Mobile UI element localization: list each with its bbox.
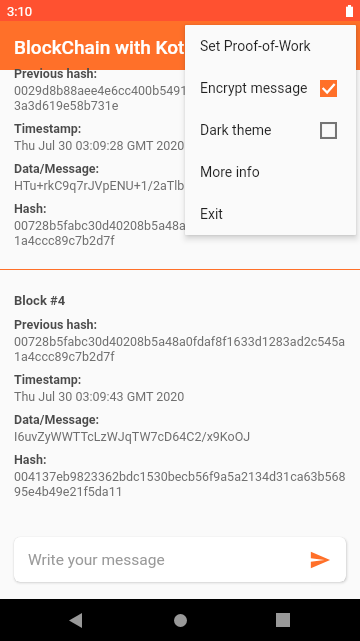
button[interactable]: Send [309,549,331,571]
staticText: 00728b5fabc30d40208b5a48a0fdaf8f1633d128… [14,334,346,364]
staticText: Timestamp: [14,121,82,136]
staticText: More info [200,164,356,180]
staticText: 00728b5fabc30d40208b5a48a 1a4ccc89c7b2d7… [14,218,186,248]
staticText: I6uvZyWWTTcLzWJqTW7cD64C2/x9KoOJ [14,429,251,444]
staticText: Exit [200,206,356,222]
staticText: HTu+rkC9q7rJVpENU+1/2aTlbF [14,178,192,193]
staticText: Block #4 [14,293,66,308]
staticText: Thu Jul 30 03:09:43 GMT 2020 [14,389,185,404]
staticText: Hash: [14,452,47,467]
staticText: 0029d8b88aee4e6cc400b5491 3a3d619e58b731… [14,83,188,113]
staticText: Set Proof-of-Work [200,38,356,54]
staticText: Previous hash: [14,317,98,332]
button[interactable]: Encrypt message [185,67,356,109]
button[interactable]: Write your message [14,537,346,582]
staticText: BlockChain with Kotlin [14,36,205,58]
staticText: Hash: [14,201,47,216]
button[interactable]: More info [185,151,356,193]
staticText: Encrypt message [200,80,320,96]
button[interactable]: Exit [185,193,356,235]
staticText: Write your message [28,551,165,569]
button[interactable]: Dark theme [185,109,356,151]
staticText: Previous hash: [14,66,98,81]
staticText: Dark theme [200,122,320,138]
staticText: Timestamp: [14,372,82,387]
staticText: Data/Message: [14,412,100,427]
button[interactable]: Home [156,599,204,641]
staticText: 3:10 [7,4,33,19]
button[interactable]: Recent apps [259,599,307,641]
button[interactable]: Set Proof-of-Work [185,25,356,67]
staticText: Thu Jul 30 03:09:28 GMT 2020 [14,138,185,153]
staticText: 004137eb9823362bdc1530becb56f9a5a2134d31… [14,469,346,499]
staticText: Data/Message: [14,161,100,176]
button[interactable]: Back [51,599,99,641]
